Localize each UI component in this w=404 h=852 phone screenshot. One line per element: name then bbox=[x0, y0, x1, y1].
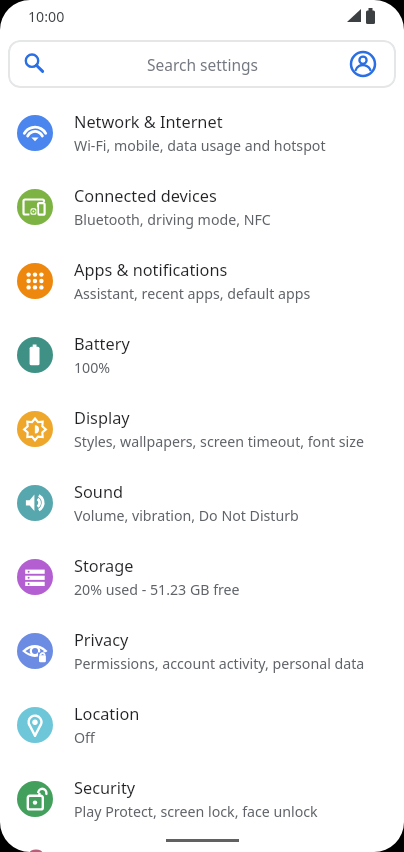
staticText: 20% used - 51.23 GB free bbox=[74, 580, 240, 599]
staticText: Network & Internet bbox=[74, 111, 223, 133]
staticText: Styles, wallpapers, screen timeout, font… bbox=[74, 432, 364, 451]
button[interactable]: Apps & notifications bbox=[0, 244, 404, 318]
staticText: Battery bbox=[74, 333, 130, 355]
staticText: Play Protect, screen lock, face unlock bbox=[74, 802, 318, 821]
staticText: Storage bbox=[74, 555, 134, 577]
staticText: Privacy bbox=[74, 629, 129, 651]
button[interactable]: Display bbox=[0, 392, 404, 466]
button[interactable]: Sound bbox=[0, 466, 404, 540]
staticText: 100% bbox=[74, 358, 111, 377]
staticText: Bluetooth, driving mode, NFC bbox=[74, 210, 271, 229]
staticText: Off bbox=[74, 728, 95, 747]
staticText: Permissions, account activity, personal … bbox=[74, 654, 365, 673]
staticText: Display bbox=[74, 407, 130, 429]
staticText: Volume, vibration, Do Not Disturb bbox=[74, 506, 299, 525]
button[interactable]: Location bbox=[0, 688, 404, 762]
button[interactable]: Security bbox=[0, 762, 404, 836]
staticText: Apps & notifications bbox=[74, 259, 228, 281]
staticText: Connected devices bbox=[74, 185, 217, 207]
staticText: Location bbox=[74, 703, 140, 725]
button[interactable]: Privacy bbox=[0, 614, 404, 688]
staticText: Security bbox=[74, 777, 136, 799]
button[interactable]: Battery bbox=[0, 318, 404, 392]
staticText: 10:00 bbox=[28, 7, 65, 26]
staticText: Search settings bbox=[147, 54, 258, 75]
button[interactable]: Network & Internet bbox=[0, 96, 404, 170]
staticText: Wi-Fi, mobile, data usage and hotspot bbox=[74, 136, 326, 155]
button[interactable]: Connected devices bbox=[0, 170, 404, 244]
staticText: Assistant, recent apps, default apps bbox=[74, 284, 311, 303]
button[interactable]: Storage bbox=[0, 540, 404, 614]
staticText: Sound bbox=[74, 481, 123, 503]
button[interactable]: Search settings bbox=[8, 40, 396, 88]
